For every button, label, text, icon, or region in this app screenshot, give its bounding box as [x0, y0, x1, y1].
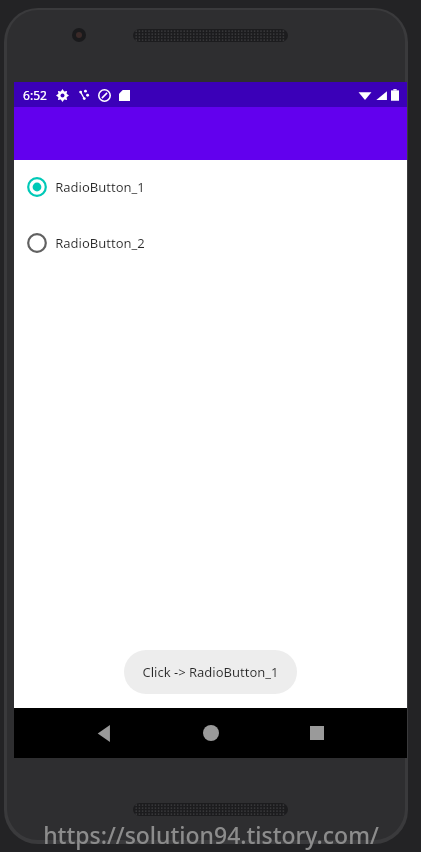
- staticText: https://solution94.tistory.com/: [43, 819, 379, 850]
- button[interactable]: Recent apps: [295, 711, 339, 755]
- staticText: Click -> RadioButton_1: [142, 663, 279, 681]
- button[interactable]: RadioButton_1: [14, 169, 407, 205]
- staticText: RadioButton_2: [55, 234, 145, 252]
- button[interactable]: Back: [82, 711, 126, 755]
- button[interactable]: Home: [189, 711, 233, 755]
- button[interactable]: RadioButton_2: [14, 225, 407, 261]
- staticText: 6:52: [23, 87, 47, 103]
- button[interactable]: Click -> RadioButton_1: [124, 650, 297, 694]
- staticText: RadioButton_1: [55, 178, 145, 196]
